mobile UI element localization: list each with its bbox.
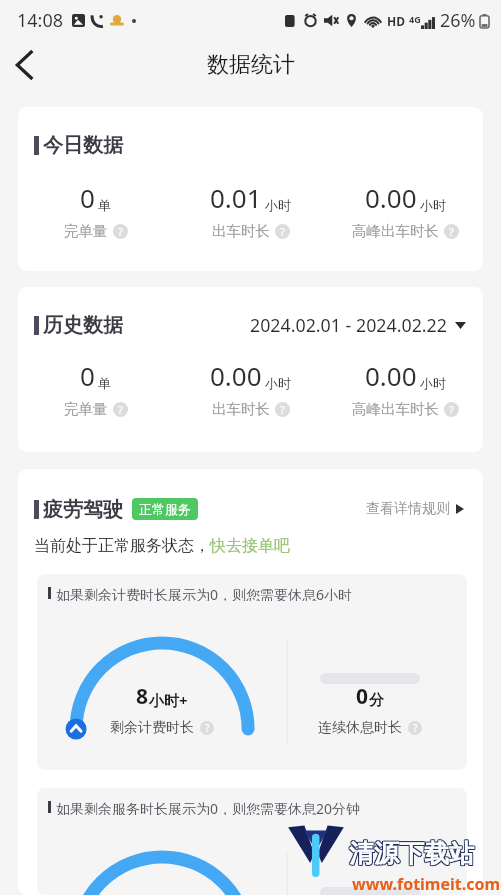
staticText: ? <box>413 721 418 735</box>
staticText: 14:08 <box>17 8 64 33</box>
staticText: 2024.02.01 - 2024.02.22 <box>250 313 447 337</box>
staticText: ? <box>280 224 285 239</box>
staticText: 0.00 <box>210 358 262 393</box>
staticText: 数据统计 <box>207 51 295 79</box>
staticText: 出车时长 <box>212 400 270 418</box>
staticText: 小时 <box>420 375 446 391</box>
staticText: 8 <box>136 682 149 711</box>
staticText: 清源下载站 <box>349 839 474 870</box>
staticText: 清源下载站 <box>350 837 475 868</box>
staticText: ? <box>449 224 454 239</box>
staticText: 小时 <box>420 197 446 213</box>
staticText: 今日数据 <box>43 133 123 158</box>
staticText: 小时+ <box>149 690 188 710</box>
button[interactable]: 2024.02.01 - 2024.02.22 <box>250 313 466 337</box>
staticText: ? <box>118 402 123 417</box>
staticText: 0.00 <box>365 180 417 215</box>
staticText: ? <box>118 224 123 239</box>
staticText: 高峰出车时长 <box>352 222 439 240</box>
staticText: 清源下载站 <box>350 839 475 870</box>
staticText: 0 <box>80 180 95 215</box>
staticText: 高峰出车时长 <box>352 400 439 418</box>
staticText: 清源下载站 <box>348 838 473 869</box>
staticText: 疲劳驾驶 <box>43 497 123 521</box>
staticText: 0.00 <box>365 358 417 393</box>
staticText: 如果剩余服务时长展示为0，则您需要休息20分钟 <box>56 799 361 815</box>
staticText: 26% <box>440 8 476 33</box>
staticText: 小时 <box>265 375 291 391</box>
staticText: 清源下载站 <box>348 839 473 870</box>
staticText: 查看详情规则 <box>366 500 450 518</box>
button[interactable]: Back <box>1 42 47 88</box>
staticText: 单 <box>98 375 111 391</box>
staticText: 0.01 <box>210 180 262 215</box>
staticText: ? <box>205 721 210 735</box>
staticText: 清源下载站 <box>348 837 473 868</box>
button[interactable]: 查看详情规则 <box>366 500 464 518</box>
staticText: 剩余计费时长 <box>110 719 194 737</box>
staticText: 完单量 <box>64 222 108 240</box>
staticText: 完单量 <box>64 400 108 418</box>
staticText: HD <box>387 13 405 29</box>
staticText: 连续休息时长 <box>318 719 402 737</box>
staticText: 历史数据 <box>43 313 123 337</box>
staticText: 清源下载站 <box>349 838 474 869</box>
staticText: 如果剩余计费时长展示为0，则您需要休息6小时 <box>56 585 353 601</box>
staticText: 正常服务 <box>139 501 191 517</box>
staticText: 清源下载站 <box>349 837 474 868</box>
staticText: 当前处于正常服务状态， <box>34 536 210 556</box>
staticText: ? <box>449 402 454 417</box>
staticText: 单 <box>98 197 111 213</box>
staticText: www.fotimeit.com <box>352 873 501 895</box>
staticText: 0 <box>356 682 369 711</box>
staticText: 4G <box>409 13 421 25</box>
staticText: 出车时长 <box>212 222 270 240</box>
button[interactable]: 快去接单吧 <box>210 536 290 556</box>
staticText: 清源下载站 <box>350 838 475 869</box>
staticText: ? <box>280 402 285 417</box>
staticText: 0 <box>80 358 95 393</box>
staticText: 分 <box>369 691 384 710</box>
staticText: 小时 <box>265 197 291 213</box>
